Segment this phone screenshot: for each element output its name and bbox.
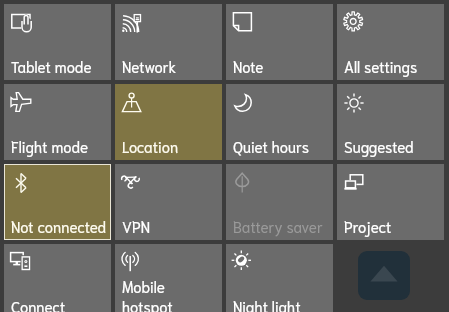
staticText: Night light xyxy=(233,296,328,312)
button[interactable]: Note xyxy=(226,4,333,80)
button[interactable]: Battery saver xyxy=(226,164,333,240)
button[interactable]: Night light xyxy=(226,244,333,312)
staticText: Flight mode xyxy=(11,136,106,156)
button[interactable]: Not connected xyxy=(4,164,111,240)
button[interactable]: Suggested xyxy=(337,84,444,160)
staticText: Connect xyxy=(11,296,106,312)
staticText: Location xyxy=(122,136,217,156)
button[interactable]: Quiet hours xyxy=(226,84,333,160)
button[interactable]: Project xyxy=(337,164,444,240)
button[interactable]: VPN xyxy=(115,164,222,240)
staticText: Project xyxy=(344,216,439,236)
staticText: VPN xyxy=(122,216,217,236)
staticText: Network xyxy=(122,56,217,76)
button[interactable]: Network xyxy=(115,4,222,80)
button[interactable]: Location xyxy=(115,84,222,160)
staticText: Battery saver xyxy=(233,216,328,236)
staticText: Quiet hours xyxy=(233,136,328,156)
staticText: Tablet mode xyxy=(11,56,106,76)
staticText: Not connected xyxy=(11,216,106,236)
button[interactable]: Tablet mode xyxy=(4,4,111,80)
staticText: All settings xyxy=(344,56,439,76)
button[interactable]: Photos app xyxy=(358,251,410,300)
button[interactable]: Mobile hotspot xyxy=(115,244,222,312)
staticText: Mobile hotspot xyxy=(122,276,217,312)
staticText: Note xyxy=(233,56,328,76)
button[interactable]: All settings xyxy=(337,4,444,80)
button[interactable]: Flight mode xyxy=(4,84,111,160)
button[interactable]: Connect xyxy=(4,244,111,312)
staticText: Suggested xyxy=(344,136,439,156)
